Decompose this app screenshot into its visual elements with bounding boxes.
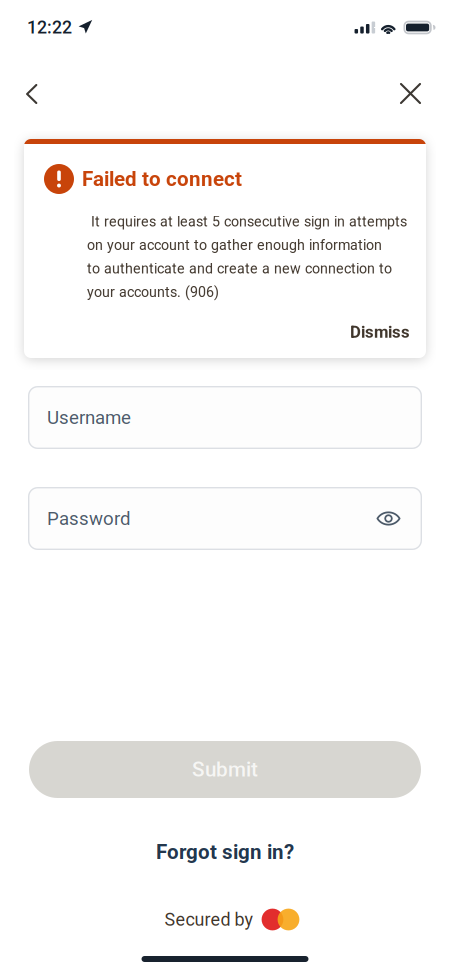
button[interactable]: Forgot sign in? — [135, 833, 315, 871]
button[interactable]: Dismiss — [326, 316, 415, 348]
staticText: 12:22 — [27, 17, 72, 38]
button[interactable]: Submit — [29, 741, 421, 798]
button[interactable]: Back — [0, 55, 51, 116]
button[interactable]: Show password — [370, 498, 407, 539]
staticText: Secured by — [165, 909, 253, 930]
staticText: to authenticate and create a new connect… — [87, 260, 392, 277]
staticText: Username — [47, 407, 131, 428]
staticText: Submit — [192, 757, 258, 782]
staticText: on your account to gather enough informa… — [87, 237, 382, 253]
staticText: your accounts. (906) — [87, 284, 219, 300]
staticText: Password — [47, 508, 131, 529]
staticText: Forgot sign in? — [156, 840, 294, 864]
button[interactable]: Close — [386, 55, 450, 116]
staticText: Failed to connect — [82, 167, 242, 191]
staticText: It requires at least 5 consecutive sign … — [87, 213, 407, 230]
staticText: Dismiss — [350, 322, 410, 342]
